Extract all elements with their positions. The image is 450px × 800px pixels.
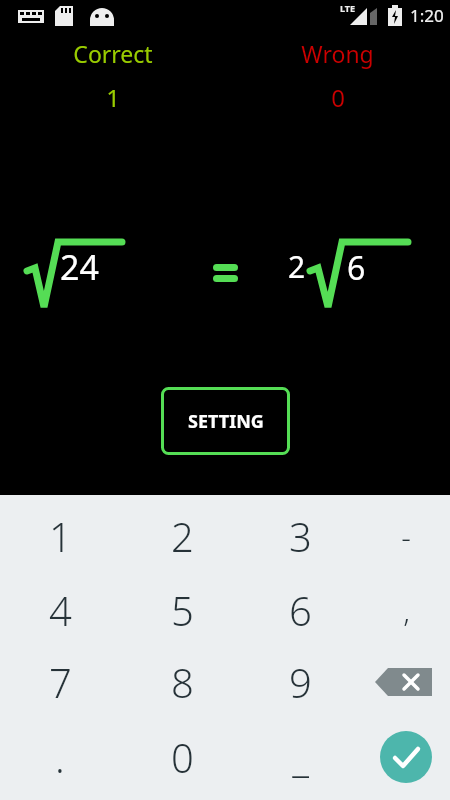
- staticText: 1: [106, 81, 120, 114]
- button[interactable]: SETTING: [161, 387, 290, 455]
- button[interactable]: -: [351, 500, 450, 572]
- staticText: 1:20: [410, 4, 444, 27]
- button[interactable]: 3: [245, 500, 355, 572]
- staticText: 6: [347, 246, 366, 290]
- staticText: LTE: [340, 2, 356, 14]
- staticText: 0: [331, 81, 345, 114]
- button[interactable]: Confirm: [351, 721, 450, 793]
- button[interactable]: ,: [351, 574, 450, 646]
- staticText: 3: [289, 509, 312, 563]
- staticText: SETTING: [188, 409, 264, 434]
- staticText: 9: [289, 655, 312, 709]
- staticText: 2: [171, 509, 194, 563]
- staticText: 8: [171, 655, 194, 709]
- staticText: Wrong: [301, 38, 374, 69]
- staticText: 7: [49, 655, 72, 709]
- button[interactable]: 4: [5, 574, 115, 646]
- button[interactable]: 7: [5, 646, 115, 718]
- button[interactable]: 1: [5, 500, 115, 572]
- staticText: 5: [171, 583, 194, 637]
- button[interactable]: 0: [127, 721, 237, 793]
- staticText: 1: [49, 509, 72, 563]
- staticText: _: [292, 730, 309, 784]
- button[interactable]: 2: [127, 500, 237, 572]
- staticText: 6: [289, 583, 312, 637]
- staticText: ,: [403, 590, 410, 631]
- button[interactable]: .: [5, 721, 115, 793]
- staticText: Correct: [73, 38, 153, 69]
- button[interactable]: 8: [127, 646, 237, 718]
- staticText: 4: [49, 583, 72, 637]
- button[interactable]: _: [245, 721, 355, 793]
- staticText: .: [55, 730, 65, 784]
- button[interactable]: Backspace: [351, 646, 450, 718]
- button[interactable]: 9: [245, 646, 355, 718]
- staticText: 24: [60, 244, 99, 290]
- staticText: 0: [171, 730, 194, 784]
- staticText: 2: [288, 246, 306, 287]
- staticText: -: [401, 516, 411, 557]
- button[interactable]: 5: [127, 574, 237, 646]
- button[interactable]: 6: [245, 574, 355, 646]
